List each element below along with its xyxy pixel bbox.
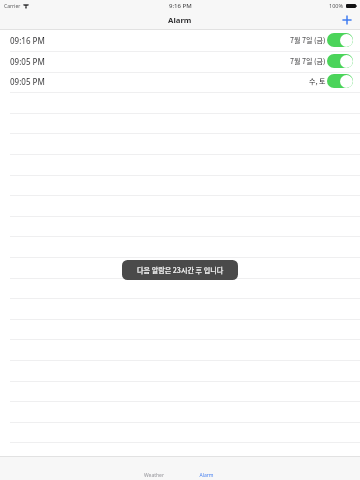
staticText: Weather [144,472,164,479]
button[interactable]: Alarm [180,469,232,480]
button[interactable]: 09:05 PM [0,51,360,72]
staticText: 수, 토 [309,76,326,86]
staticText: Alarm [168,15,192,26]
staticText: 09:05 PM [10,76,45,87]
staticText: Alarm [199,472,214,479]
button[interactable]: 09:05 PM [0,71,360,92]
staticText: 09:05 PM [10,56,45,67]
staticText: 7월 7일 (금) [290,35,326,45]
button[interactable]: Weather [128,469,180,480]
staticText: 09:16 PM [10,35,45,46]
button[interactable]: Add alarm [336,9,357,30]
staticText: 9:16 PM [169,2,192,10]
staticText: Carrier [4,3,21,10]
staticText: 7월 7일 (금) [290,56,326,66]
staticText: 100% [329,2,344,9]
button[interactable]: 09:16 PM [0,30,360,51]
staticText: 다음 알람은 23시간 후 입니다 [137,265,224,275]
